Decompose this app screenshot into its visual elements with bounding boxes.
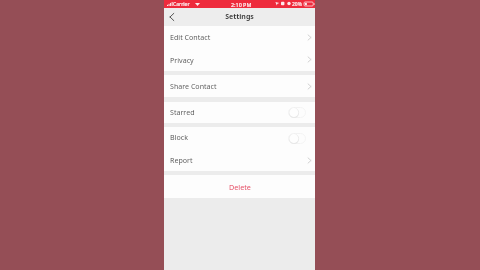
button[interactable]: Starred toggle [288, 107, 306, 118]
staticText: 20% [292, 1, 302, 8]
button[interactable]: Block toggle [288, 133, 306, 144]
button[interactable]: Block [164, 127, 315, 149]
staticText: Settings [225, 12, 254, 22]
staticText: Carrier [173, 1, 190, 8]
staticText: Privacy [170, 55, 194, 65]
staticText: Edit Contact [170, 32, 211, 42]
button[interactable]: Delete [164, 175, 315, 198]
button[interactable]: Edit Contact [164, 26, 315, 48]
button[interactable]: Back [164, 8, 180, 26]
button[interactable]: Report [164, 149, 315, 171]
staticText: Delete [229, 182, 251, 192]
staticText: 2:10 PM [231, 1, 252, 8]
staticText: Block [170, 132, 188, 142]
button[interactable]: Starred [164, 102, 315, 123]
staticText: Starred [170, 107, 195, 117]
button[interactable]: Privacy [164, 48, 315, 71]
button[interactable]: Share Contact [164, 75, 315, 97]
staticText: Report [170, 155, 193, 165]
staticText: Share Contact [170, 81, 217, 91]
